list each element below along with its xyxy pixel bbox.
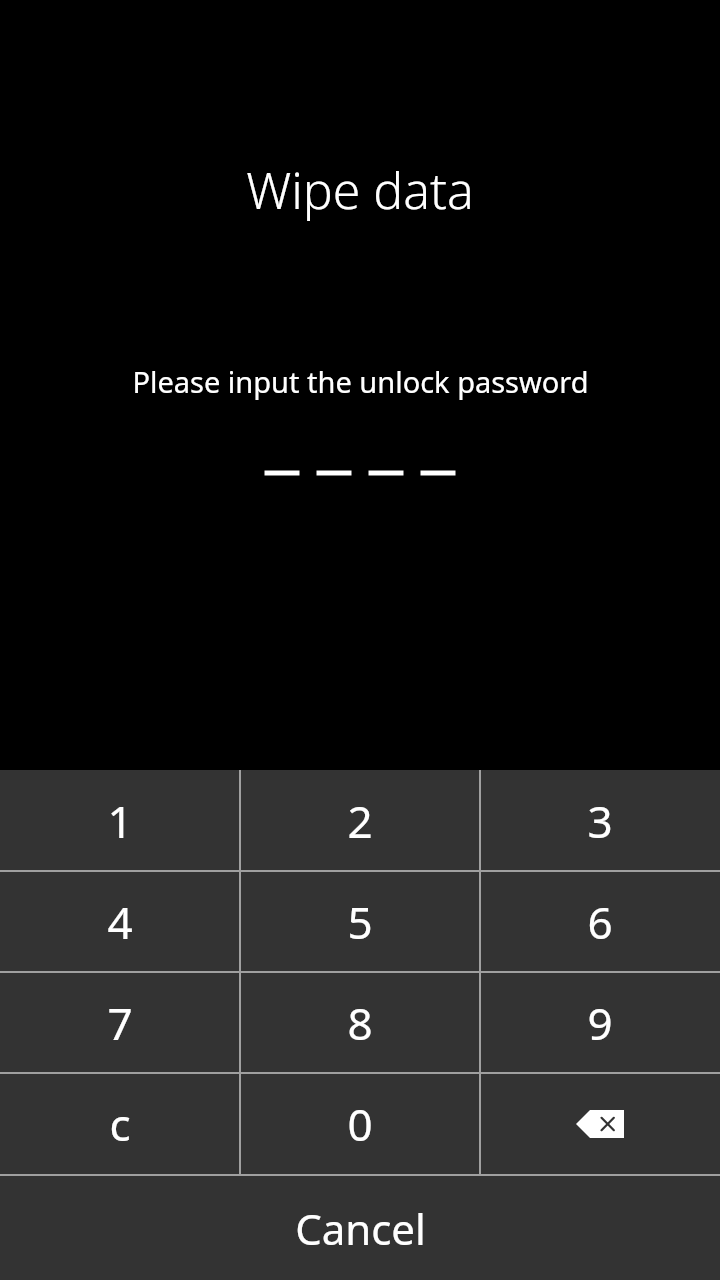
- staticText: c: [109, 1094, 131, 1154]
- staticText: 7: [107, 993, 133, 1053]
- staticText: 0: [347, 1094, 373, 1154]
- staticText: 4: [107, 892, 133, 952]
- button[interactable]: 0: [240, 1073, 480, 1174]
- button[interactable]: Cancel: [0, 1176, 720, 1280]
- button[interactable]: 6: [480, 871, 720, 972]
- button[interactable]: 1: [0, 770, 240, 871]
- button[interactable]: 3: [480, 770, 720, 871]
- staticText: Please input the unlock password: [132, 362, 589, 401]
- button[interactable]: c: [0, 1073, 240, 1174]
- staticText: 9: [587, 993, 613, 1053]
- staticText: Wipe data: [246, 156, 474, 224]
- button[interactable]: 9: [480, 972, 720, 1073]
- button[interactable]: 4: [0, 871, 240, 972]
- staticText: 3: [587, 791, 613, 851]
- staticText: 2: [347, 791, 373, 851]
- button[interactable]: 2: [240, 770, 480, 871]
- staticText: 1: [107, 791, 133, 851]
- staticText: 8: [347, 993, 373, 1053]
- button[interactable]: 7: [0, 972, 240, 1073]
- staticText: 5: [347, 892, 373, 952]
- staticText: 6: [587, 892, 613, 952]
- staticText: Cancel: [295, 1200, 426, 1257]
- button[interactable]: Backspace: [480, 1073, 720, 1174]
- button[interactable]: 8: [240, 972, 480, 1073]
- button[interactable]: 5: [240, 871, 480, 972]
